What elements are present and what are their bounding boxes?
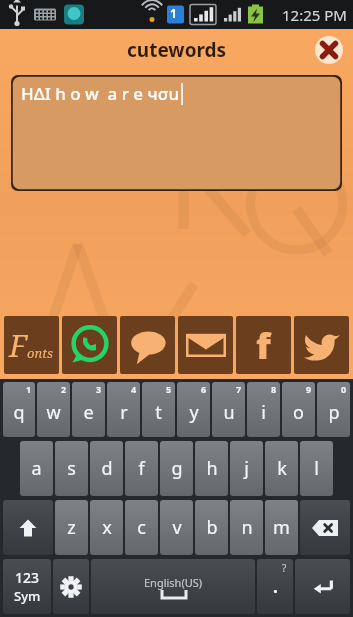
staticText: z [67, 515, 76, 540]
button[interactable]: g [160, 441, 193, 496]
button[interactable]: k [265, 441, 298, 496]
staticText: h [206, 456, 218, 481]
button[interactable]: 6 [177, 382, 210, 437]
staticText: r [120, 400, 128, 425]
staticText: i [261, 400, 266, 425]
button[interactable]: c [125, 500, 158, 555]
button[interactable]: 2 [37, 382, 70, 437]
staticText: HΔI h o w a r e чσu [21, 82, 180, 105]
staticText: f [138, 456, 145, 481]
staticText: 1 [26, 383, 32, 395]
button[interactable]: b [195, 500, 228, 555]
staticText: t [155, 400, 162, 425]
staticText: 6 [201, 383, 207, 395]
button[interactable]: Fonts [4, 316, 59, 374]
staticText: 8 [271, 383, 277, 395]
button[interactable]: Email [178, 316, 233, 374]
staticText: o [293, 400, 304, 425]
button[interactable]: WhatsApp [62, 316, 117, 374]
button[interactable]: f [125, 441, 158, 496]
staticText: 7 [236, 383, 242, 395]
button[interactable]: 5 [142, 382, 175, 437]
staticText: m [273, 515, 290, 540]
staticText: y [189, 400, 199, 425]
button[interactable]: x [90, 500, 123, 555]
button[interactable]: English(US) [91, 559, 255, 614]
staticText: s [67, 456, 76, 481]
staticText: w [46, 400, 61, 425]
staticText: c [137, 515, 146, 540]
button[interactable]: 7 [212, 382, 245, 437]
button[interactable]: Message [120, 316, 175, 374]
button[interactable]: z [55, 500, 88, 555]
button[interactable]: Backspace [300, 500, 350, 555]
button[interactable]: 1 [3, 382, 35, 437]
staticText: j [244, 456, 249, 481]
staticText: a [31, 456, 42, 481]
staticText: 12:25 PM [282, 5, 347, 25]
staticText: 2 [61, 383, 67, 395]
staticText: Sym [14, 587, 41, 605]
staticText: n [241, 515, 253, 540]
staticText: 3 [96, 383, 102, 395]
button[interactable]: v [160, 500, 193, 555]
staticText: v [172, 515, 182, 540]
button[interactable]: Symbols [3, 559, 51, 614]
staticText: 123 [15, 568, 40, 587]
button[interactable]: h [195, 441, 228, 496]
staticText: k [277, 456, 287, 481]
button[interactable]: d [90, 441, 123, 496]
staticText: onts [27, 344, 54, 362]
staticText: b [206, 515, 218, 540]
button[interactable]: a [20, 441, 53, 496]
staticText: l [314, 456, 319, 481]
staticText: . [273, 575, 278, 598]
button[interactable]: Shift [3, 500, 53, 555]
staticText: x [102, 515, 112, 540]
staticText: ? [282, 561, 287, 575]
button[interactable]: 3 [72, 382, 105, 437]
staticText: English(US) [144, 575, 203, 590]
staticText: e [83, 400, 94, 425]
staticText: p [328, 400, 340, 425]
staticText: 9 [306, 383, 312, 395]
button[interactable]: Close [315, 36, 343, 64]
staticText: q [13, 400, 25, 425]
staticText: 1 [170, 5, 177, 21]
staticText: F [9, 325, 27, 366]
button[interactable]: Twitter [294, 316, 349, 374]
staticText: 0 [341, 383, 347, 395]
staticText: 5 [166, 383, 172, 395]
button[interactable]: HΔI h o w a r e чσu [11, 75, 342, 191]
button[interactable]: l [300, 441, 333, 496]
staticText: u [223, 400, 235, 425]
button[interactable]: 9 [282, 382, 315, 437]
button[interactable]: Facebook [236, 316, 291, 374]
button[interactable]: s [55, 441, 88, 496]
staticText: d [101, 456, 113, 481]
button[interactable]: n [230, 500, 263, 555]
button[interactable]: 0 [317, 382, 350, 437]
staticText: cutewords [127, 37, 227, 63]
button[interactable]: Period [257, 559, 293, 614]
staticText: f [256, 321, 271, 370]
button[interactable]: Settings [53, 559, 89, 614]
button[interactable]: Enter [295, 559, 350, 614]
staticText: 4 [131, 383, 137, 395]
button[interactable]: m [265, 500, 298, 555]
staticText: g [171, 456, 183, 481]
button[interactable]: 8 [247, 382, 280, 437]
button[interactable]: 4 [107, 382, 140, 437]
button[interactable]: j [230, 441, 263, 496]
